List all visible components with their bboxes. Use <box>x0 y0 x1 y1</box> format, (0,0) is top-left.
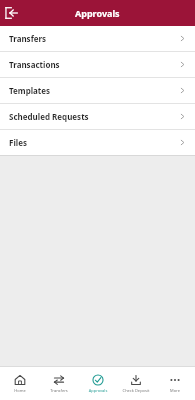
button[interactable]: Check Deposit <box>117 372 155 395</box>
button[interactable]: Transfers <box>0 26 195 51</box>
button[interactable]: Sign out <box>0 2 22 24</box>
staticText: More <box>156 388 194 393</box>
staticText: Transfers <box>40 388 78 393</box>
button[interactable]: Templates <box>0 78 195 103</box>
button[interactable]: Scheduled Requests <box>0 104 195 129</box>
staticText: Files <box>9 137 27 148</box>
button[interactable]: Transfers <box>40 372 78 395</box>
staticText: Check Deposit <box>117 388 155 393</box>
button[interactable]: More <box>156 372 194 395</box>
button[interactable]: Approvals <box>79 372 117 395</box>
staticText: Templates <box>9 85 51 96</box>
staticText: Approvals <box>79 388 117 393</box>
staticText: Transactions <box>9 59 60 70</box>
staticText: Home <box>1 388 39 393</box>
button[interactable]: Home <box>1 372 39 395</box>
button[interactable]: Files <box>0 130 195 155</box>
staticText: Scheduled Requests <box>9 111 89 122</box>
staticText: Approvals <box>75 7 120 19</box>
button[interactable]: Transactions <box>0 52 195 77</box>
staticText: Transfers <box>9 33 47 44</box>
